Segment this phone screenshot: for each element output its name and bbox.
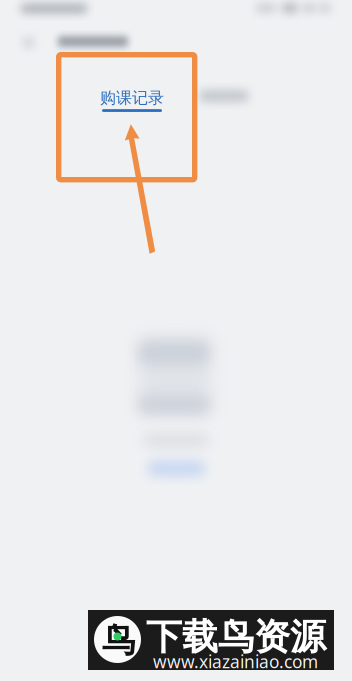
staticText: 购课记录	[100, 88, 164, 108]
button[interactable]: 购课记录	[94, 84, 170, 116]
staticText: www.xiazainiao.com	[153, 650, 318, 673]
staticText: 鸟	[102, 620, 135, 661]
staticText: 下载鸟资源	[146, 615, 326, 659]
